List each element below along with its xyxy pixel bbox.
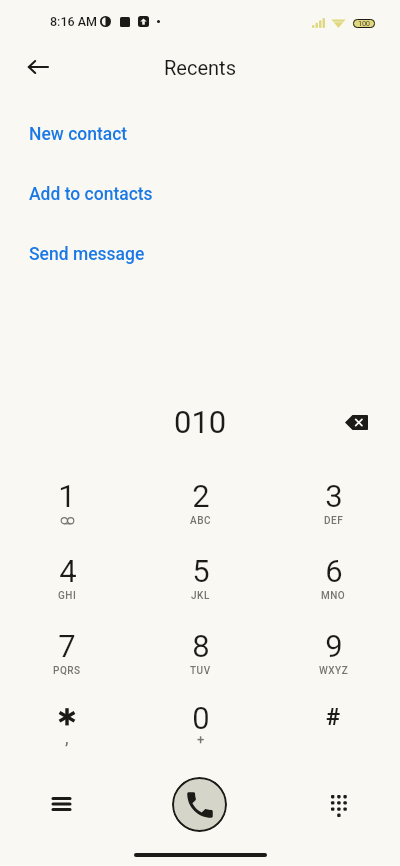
button[interactable]: Call <box>172 777 227 832</box>
button[interactable]: Dialpad <box>317 783 361 827</box>
staticText: ABC <box>190 515 211 527</box>
button[interactable]: Add to contacts <box>29 184 153 205</box>
staticText: WXYZ <box>319 665 349 677</box>
staticText: 3 <box>325 478 343 510</box>
staticText: 4 <box>59 553 77 585</box>
button[interactable]: Back <box>16 45 60 89</box>
staticText: GHI <box>58 590 77 602</box>
button[interactable]: 1 <box>0 478 134 553</box>
button[interactable]: , <box>0 703 134 778</box>
button[interactable]: Send message <box>29 244 145 265</box>
staticText: JKL <box>191 590 210 602</box>
staticText: 1 <box>58 478 76 510</box>
staticText: # <box>326 703 341 731</box>
button[interactable]: # <box>267 703 400 778</box>
button[interactable]: Call history menu <box>39 782 83 826</box>
staticText: + <box>197 732 205 747</box>
button[interactable]: 5 <box>134 553 267 628</box>
button[interactable]: 7 <box>0 628 134 703</box>
staticText: New contact <box>29 124 128 145</box>
button[interactable]: Backspace <box>334 400 378 444</box>
staticText: Recents <box>0 56 400 79</box>
staticText: MNO <box>321 590 346 602</box>
staticText: , <box>65 729 69 748</box>
staticText: 9 <box>325 628 343 660</box>
staticText: Add to contacts <box>29 184 153 205</box>
staticText: DEF <box>324 515 344 527</box>
staticText: TUV <box>190 665 211 677</box>
button[interactable]: 6 <box>267 553 400 628</box>
button[interactable]: 9 <box>267 628 400 703</box>
staticText: 6 <box>325 553 343 585</box>
staticText: 5 <box>192 553 210 585</box>
staticText: 7 <box>58 628 76 660</box>
staticText: 8:16 AM <box>50 14 97 29</box>
staticText: 2 <box>192 478 210 510</box>
staticText: PQRS <box>53 665 81 677</box>
staticText: 0 <box>192 700 210 732</box>
button[interactable]: 3 <box>267 478 400 553</box>
staticText: 100 <box>358 19 370 28</box>
staticText: Send message <box>29 244 145 265</box>
button[interactable]: 0 <box>134 703 267 778</box>
button[interactable]: 4 <box>0 553 134 628</box>
staticText: 8 <box>192 628 210 660</box>
button[interactable]: New contact <box>29 124 128 145</box>
button[interactable]: 8 <box>134 628 267 703</box>
staticText: 010 <box>174 404 227 440</box>
button[interactable]: 2 <box>134 478 267 553</box>
